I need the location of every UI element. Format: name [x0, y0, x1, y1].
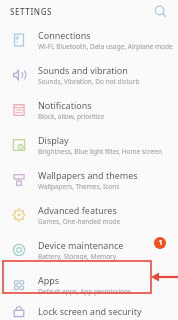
button[interactable]: Display	[0, 127, 178, 162]
staticText: Apps	[38, 274, 60, 286]
staticText: SETTINGS	[10, 6, 53, 17]
staticText: Display	[38, 134, 69, 146]
button[interactable]: Sounds and vibration	[0, 57, 178, 92]
staticText: Lock screen and security	[38, 305, 142, 317]
staticText: Wi-Fi, Bluetooth, Data usage, Airplane m…	[38, 42, 173, 51]
button[interactable]: Notifications	[0, 92, 178, 127]
button[interactable]: Apps	[0, 267, 178, 302]
staticText: Block, allow, prioritize	[38, 112, 105, 121]
button[interactable]: Connections	[0, 22, 178, 57]
button[interactable]: Advanced features	[0, 197, 178, 232]
button[interactable]: Lock screen and security	[0, 302, 178, 320]
staticText: Wallpapers, Themes, Icons	[38, 182, 120, 191]
button[interactable]: Search	[150, 1, 170, 21]
staticText: Advanced features	[38, 204, 117, 216]
staticText: Games, One-handed mode	[38, 217, 121, 226]
staticText: Default apps, App permissions	[38, 287, 132, 296]
staticText: Device maintenance	[38, 239, 124, 251]
staticText: Notifications	[38, 99, 92, 111]
staticText: Battery, Storage, Memory	[38, 252, 117, 261]
staticText: 1	[158, 238, 163, 248]
button[interactable]: Wallpapers and themes	[0, 162, 178, 197]
staticText: Sounds, Vibration, Do not disturb	[38, 77, 140, 86]
staticText: Connections	[38, 29, 91, 41]
staticText: Brightness, Blue light filter, Home scre…	[38, 147, 162, 156]
staticText: Wallpapers and themes	[38, 169, 138, 181]
button[interactable]: Device maintenance	[0, 232, 178, 267]
staticText: Sounds and vibration	[38, 64, 128, 76]
